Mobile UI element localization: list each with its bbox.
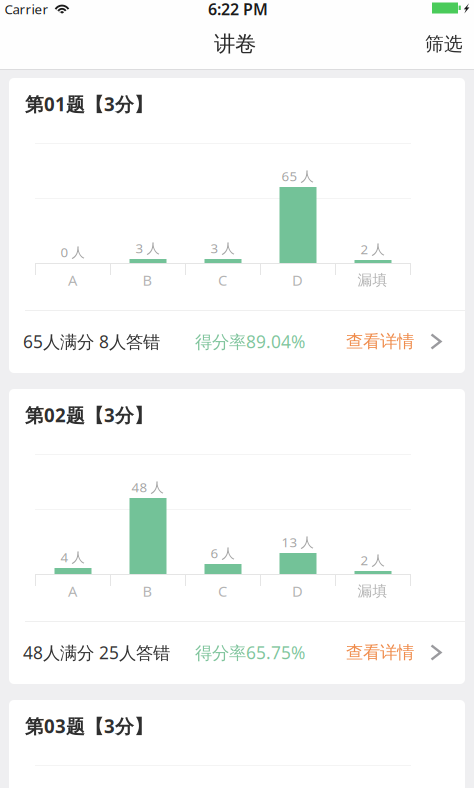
staticText: 13 人	[281, 533, 313, 551]
button[interactable]: 48人满分 25人答错	[9, 621, 465, 684]
staticText: 48人满分 25人答错	[23, 641, 170, 664]
staticText: 漏填	[357, 271, 387, 289]
staticText: Carrier	[4, 0, 48, 18]
staticText: 6 人	[210, 544, 234, 562]
staticText: D	[292, 270, 303, 290]
staticText: 3 人	[135, 239, 159, 257]
staticText: 漏填	[357, 582, 387, 600]
staticText: 48 人	[131, 478, 163, 496]
staticText: A	[68, 270, 77, 290]
staticText: 第01题【3分】	[25, 92, 153, 116]
staticText: 得分率89.04%	[195, 330, 305, 353]
staticText: B	[142, 581, 152, 601]
staticText: 3 人	[210, 239, 234, 257]
staticText: B	[142, 270, 152, 290]
staticText: 讲卷	[214, 31, 256, 57]
staticText: 筛选	[425, 32, 463, 55]
staticText: 第03题【3分】	[25, 714, 153, 738]
staticText: 6:22 PM	[208, 0, 268, 20]
staticText: 查看详情	[346, 642, 414, 663]
staticText: 查看详情	[346, 331, 414, 352]
staticText: 第02题【3分】	[25, 403, 153, 427]
staticText: D	[292, 581, 303, 601]
staticText: A	[68, 581, 77, 601]
staticText: 65 人	[281, 167, 313, 185]
staticText: 65人满分 8人答错	[23, 330, 160, 353]
staticText: 0 人	[60, 243, 84, 261]
staticText: 4 人	[60, 548, 84, 566]
button[interactable]: 筛选	[413, 22, 474, 66]
button[interactable]: 65人满分 8人答错	[9, 310, 465, 373]
staticText: C	[218, 270, 227, 290]
staticText: 2 人	[360, 551, 384, 569]
staticText: 2 人	[360, 240, 384, 258]
staticText: 得分率65.75%	[195, 641, 305, 664]
staticText: C	[218, 581, 227, 601]
